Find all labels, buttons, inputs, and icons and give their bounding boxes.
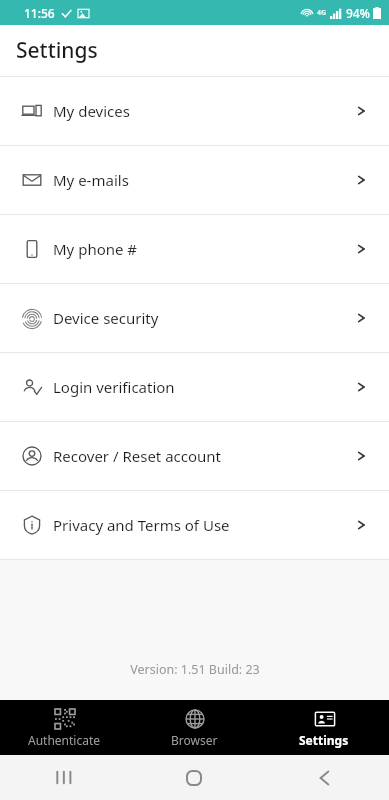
- button[interactable]: Authenticate: [0, 700, 129, 755]
- staticText: Version: 1.51 Build: 23: [130, 661, 260, 678]
- staticText: Login verification: [53, 377, 175, 397]
- button[interactable]: Home: [129, 755, 259, 800]
- button[interactable]: Back: [259, 755, 389, 800]
- staticText: Device security: [53, 308, 159, 328]
- staticText: 4G: [317, 8, 327, 18]
- button[interactable]: My e-mails: [0, 146, 389, 215]
- other: Authenticate: [55, 709, 75, 729]
- button[interactable]: My phone #: [0, 215, 389, 284]
- other: Browser: [185, 709, 205, 729]
- other: Settings: [315, 709, 335, 729]
- button[interactable]: Login verification: [0, 353, 389, 422]
- staticText: Recover / Reset account: [53, 446, 222, 466]
- staticText: My e-mails: [53, 170, 129, 190]
- button[interactable]: Device security: [0, 284, 389, 353]
- button[interactable]: Recover / Reset account: [0, 422, 389, 491]
- staticText: My devices: [53, 101, 130, 121]
- staticText: Settings: [16, 36, 98, 65]
- button[interactable]: Browser: [129, 700, 259, 755]
- button[interactable]: My devices: [0, 77, 389, 146]
- staticText: My phone #: [53, 239, 138, 259]
- button[interactable]: Settings: [259, 700, 389, 755]
- staticText: Privacy and Terms of Use: [53, 515, 230, 535]
- staticText: Settings: [299, 732, 349, 748]
- staticText: Authenticate: [28, 732, 101, 748]
- staticText: Browser: [171, 732, 218, 748]
- staticText: 11:56: [24, 5, 55, 21]
- staticText: 94%: [346, 5, 370, 21]
- button[interactable]: Recents: [0, 755, 129, 800]
- button[interactable]: Privacy and Terms of Use: [0, 491, 389, 560]
